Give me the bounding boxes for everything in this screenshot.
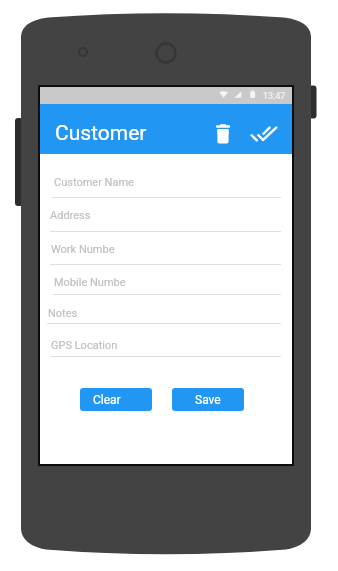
button[interactable]: [211, 120, 235, 146]
staticText: Notes: [48, 307, 78, 320]
button[interactable]: Save: [172, 388, 244, 411]
button[interactable]: Work Numbe: [50, 250, 281, 265]
button[interactable]: Clear: [80, 388, 152, 411]
staticText: Customer: [55, 121, 147, 146]
button[interactable]: Customer Name: [52, 183, 281, 198]
staticText: 13:47: [263, 91, 286, 102]
staticText: Save: [195, 393, 221, 407]
staticText: Customer Name: [54, 176, 134, 189]
button[interactable]: Mobile Numbe: [53, 280, 281, 295]
button[interactable]: Notes: [47, 309, 281, 324]
staticText: Clear: [93, 393, 121, 407]
staticText: GPS Location: [51, 339, 118, 352]
button[interactable]: [246, 120, 280, 146]
button[interactable]: GPS Location: [50, 342, 281, 357]
staticText: Address: [50, 209, 91, 222]
staticText: Work Numbe: [51, 243, 115, 256]
staticText: Mobile Numbe: [54, 276, 126, 289]
button[interactable]: Address: [50, 217, 281, 232]
